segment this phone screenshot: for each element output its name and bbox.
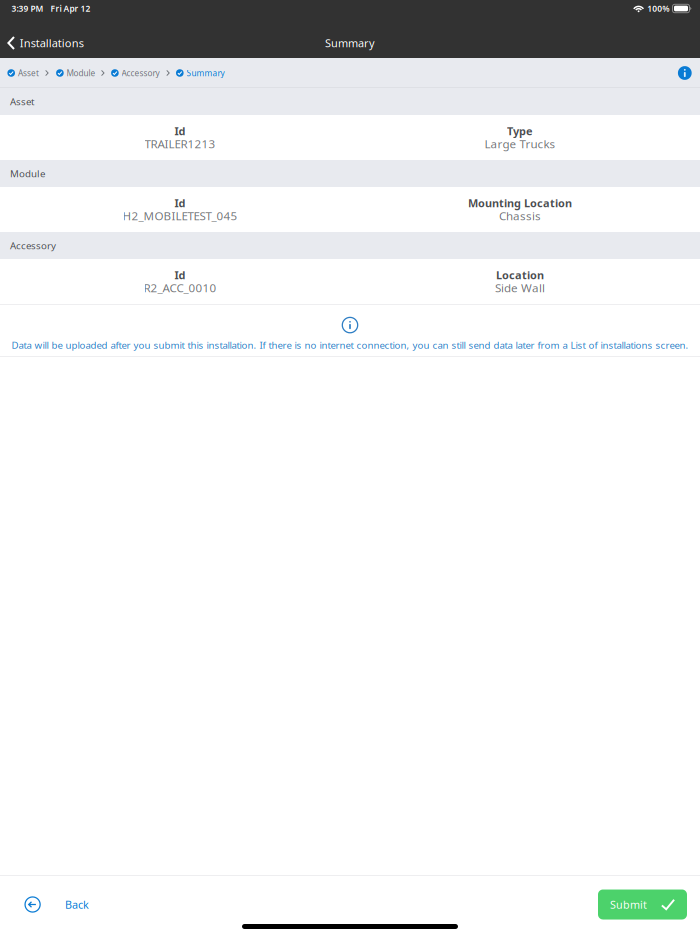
staticText: Accessory	[10, 239, 56, 252]
staticText: Mounting Location	[468, 196, 572, 210]
staticText: Asset	[10, 95, 35, 108]
staticText: Large Trucks	[484, 136, 555, 151]
staticText: Summary	[186, 67, 224, 78]
button[interactable]: Accessory	[111, 60, 160, 85]
staticText: TRAILER1213	[144, 136, 215, 151]
staticText: H2_MOBILETEST_045	[122, 208, 237, 223]
staticText: Module	[67, 67, 96, 78]
button[interactable]: Back	[0, 887, 89, 921]
button[interactable]: Module	[56, 60, 96, 85]
staticText: Module	[10, 167, 45, 180]
staticText: Summary	[325, 36, 375, 50]
staticText: Location	[496, 268, 544, 282]
staticText: 100%	[647, 3, 669, 14]
button[interactable]: Summary	[176, 60, 224, 85]
staticText: Id	[174, 268, 185, 282]
button[interactable]: Information	[674, 62, 696, 84]
button[interactable]: Submit	[598, 889, 687, 919]
staticText: Side Wall	[495, 280, 545, 295]
button[interactable]: Asset	[7, 60, 39, 85]
staticText: Id	[174, 196, 185, 210]
staticText: Type	[507, 124, 533, 138]
staticText: Installations	[20, 36, 84, 50]
staticText: 3:39 PM	[11, 3, 43, 14]
staticText: Back	[65, 897, 89, 912]
staticText: Asset	[18, 67, 39, 78]
staticText: Fri Apr 12	[50, 3, 90, 14]
staticText: Chassis	[499, 208, 541, 223]
staticText: Id	[174, 124, 185, 138]
staticText: Submit	[610, 897, 647, 912]
staticText: Accessory	[122, 67, 160, 78]
button[interactable]: Installations	[0, 29, 84, 57]
staticText: R2_ACC_0010	[143, 280, 216, 295]
staticText: Data will be uploaded after you submit t…	[11, 339, 688, 351]
